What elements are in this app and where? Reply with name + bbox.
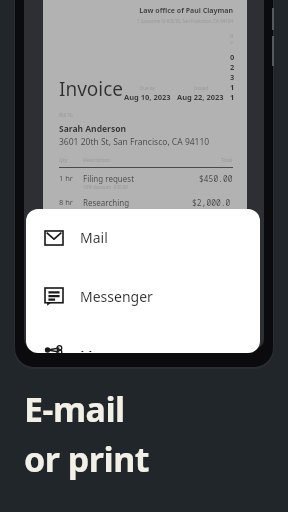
staticText: Aug 22, 2023 [177,92,224,102]
staticText: 8 hr [59,197,83,207]
button[interactable]: More sharing options [26,312,260,353]
staticText: or print [24,436,149,482]
staticText: Sarah Anderson [59,123,126,135]
button[interactable]: Mail [26,209,260,253]
staticText: Invoice [59,76,124,102]
staticText: Total [221,157,233,164]
staticText: No. [230,33,233,51]
other: Mail [45,229,63,247]
button[interactable]: Messenger [26,253,260,312]
staticText: Issued [194,85,208,91]
staticText: Qty [59,157,83,164]
staticText: Mail [80,228,108,247]
other: Messenger [45,288,63,306]
staticText: 10% discount -$50.00 [83,184,128,190]
staticText: 3601 20th St, San Francisco, CA 94110 [59,136,210,148]
staticText: Filing request [83,173,135,184]
staticText: Researching [83,197,130,208]
staticText: Due by [140,85,155,91]
staticText: Description [83,157,110,164]
staticText: $450.00 [199,173,233,184]
staticText: 1 Sansome St #3010, San Francisco, CA 94… [59,18,233,24]
staticText: Messenger [80,287,153,306]
staticText: Bill To [59,112,73,119]
staticText: $2,000.00 [192,197,233,213]
staticText: 1 hr [59,173,83,183]
other: More sharing options [45,347,63,353]
staticText: 02311 [230,52,233,102]
staticText: Researching several prior-art [83,208,192,213]
staticText: Law office of Paul Clayman [59,6,233,16]
staticText: E-mail [24,386,125,432]
staticText: Aug 10, 2023 [124,92,171,102]
staticText: More... [80,346,126,352]
